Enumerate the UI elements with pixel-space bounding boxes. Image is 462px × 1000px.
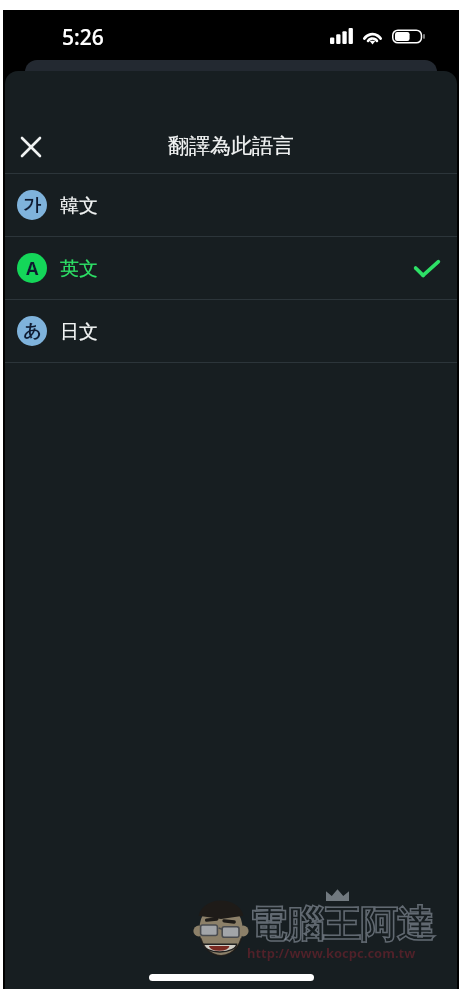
staticText: http://www.kocpc.com.tw [247,944,416,962]
button[interactable]: 가 [5,174,457,236]
staticText: 電腦王阿達 [249,901,434,948]
staticText: あ [23,320,42,343]
staticText: 日文 [60,320,98,344]
staticText: 韓文 [60,194,98,218]
staticText: A [26,256,39,281]
button[interactable]: あ [5,300,457,362]
staticText: 翻譯為此語言 [168,133,294,159]
button[interactable]: Close [6,122,56,172]
staticText: 가 [23,194,41,217]
button[interactable]: A [5,237,457,299]
staticText: 5:26 [62,23,104,52]
staticText: 英文 [60,257,98,281]
